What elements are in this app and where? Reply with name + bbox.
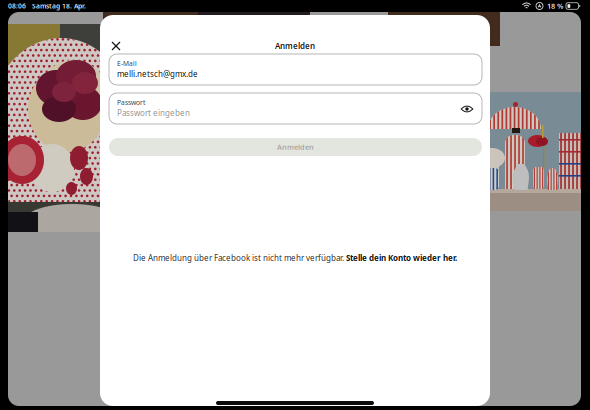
staticText: Passwort eingeben [117, 108, 190, 118]
staticText: 18 % [547, 1, 563, 11]
staticText: E-Mail [117, 59, 137, 68]
staticText: Anmelden [275, 41, 315, 51]
staticText: Passwort [117, 98, 145, 107]
button[interactable]: Passwort anzeigen [460, 102, 474, 116]
button[interactable]: Schließen [105, 35, 127, 57]
button[interactable]: Anmelden [109, 138, 482, 156]
staticText: 08:06 [8, 1, 26, 11]
staticText: Anmelden [277, 142, 314, 152]
button[interactable]: Stelle dein Konto wieder her. [346, 253, 457, 263]
staticText: Die Anmeldung über Facebook ist nicht me… [133, 253, 346, 263]
staticText: melli.netsch@gmx.de [117, 69, 198, 79]
staticText: Stelle dein Konto wieder her. [346, 253, 457, 263]
staticText: Samstag 18. Apr. [32, 1, 86, 11]
